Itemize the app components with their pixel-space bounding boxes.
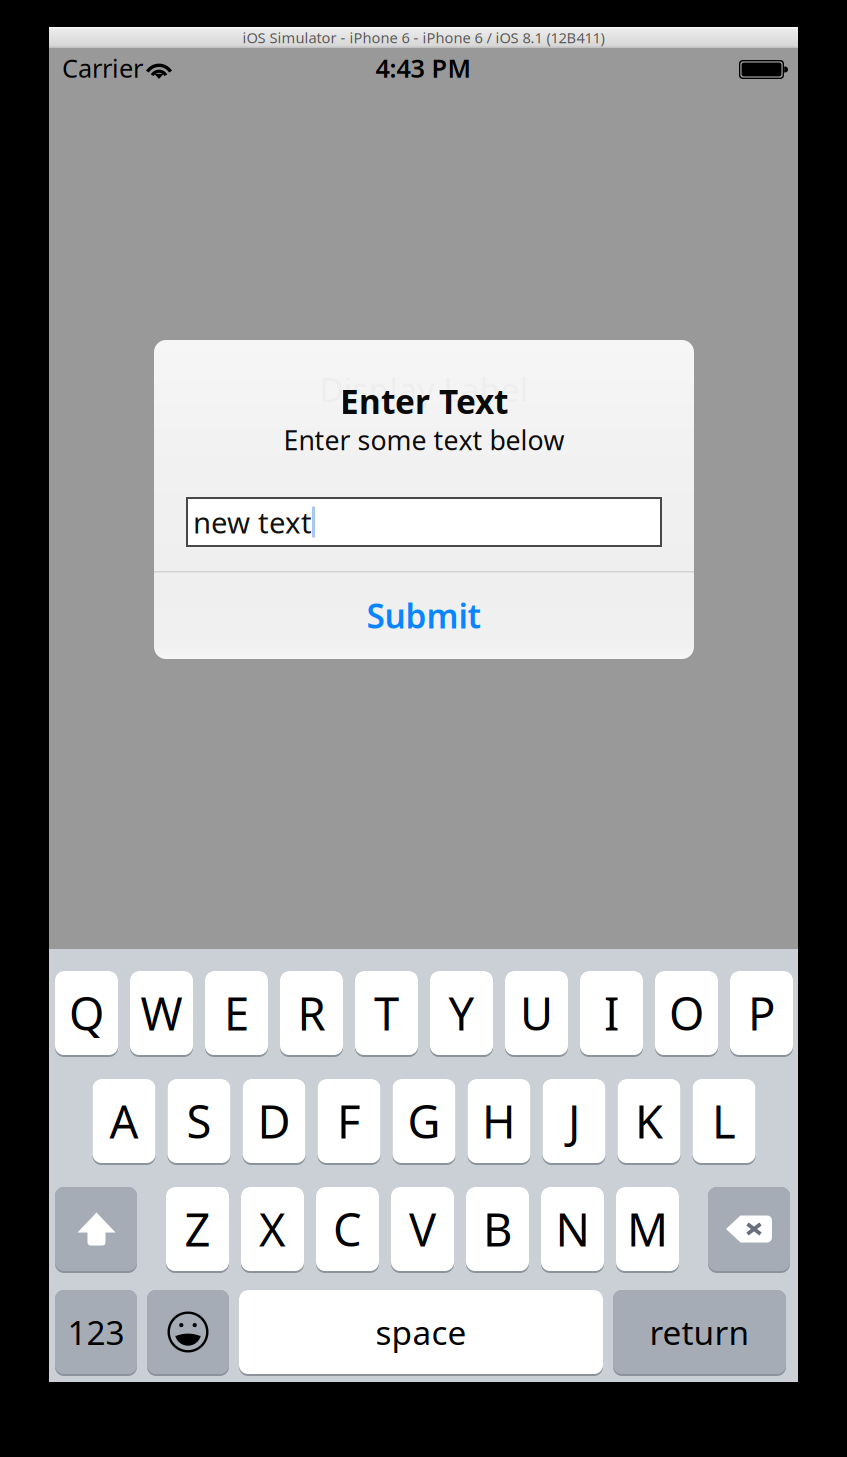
staticText: W xyxy=(140,983,182,1043)
staticText: 4:43 PM xyxy=(375,51,471,85)
staticText: V xyxy=(409,1199,436,1259)
staticText: N xyxy=(555,1199,589,1259)
button[interactable]: V xyxy=(391,1187,454,1273)
staticText: M xyxy=(627,1199,668,1259)
staticText: H xyxy=(482,1091,516,1151)
staticText: iOS Simulator - iPhone 6 - iPhone 6 / iO… xyxy=(242,28,604,47)
staticText: C xyxy=(333,1199,362,1259)
button[interactable]: 123 xyxy=(55,1290,137,1376)
staticText: G xyxy=(407,1091,440,1151)
staticText: T xyxy=(374,983,399,1043)
staticText: Enter some text below xyxy=(283,422,564,458)
staticText: Carrier xyxy=(62,51,143,85)
staticText: F xyxy=(337,1091,361,1151)
button[interactable]: W xyxy=(130,971,193,1057)
staticText: I xyxy=(604,983,619,1043)
staticText: Q xyxy=(69,983,104,1043)
button[interactable]: return xyxy=(613,1290,786,1376)
staticText: D xyxy=(257,1091,290,1151)
button[interactable]: Z xyxy=(166,1187,229,1273)
button[interactable]: U xyxy=(505,971,568,1057)
staticText: L xyxy=(712,1091,736,1151)
button[interactable]: S xyxy=(167,1079,230,1165)
button[interactable]: space xyxy=(239,1290,603,1376)
staticText: K xyxy=(635,1091,663,1151)
staticText: space xyxy=(375,1310,466,1354)
button[interactable]: O xyxy=(655,971,718,1057)
staticText: J xyxy=(568,1091,580,1151)
button[interactable]: Y xyxy=(430,971,493,1057)
staticText: Display Label xyxy=(319,367,528,411)
button[interactable]: R xyxy=(280,971,343,1057)
staticText: X xyxy=(259,1199,286,1259)
staticText: P xyxy=(748,983,775,1043)
button[interactable]: Submit xyxy=(154,572,694,659)
staticText: return xyxy=(649,1310,749,1354)
staticText: B xyxy=(483,1199,512,1259)
button[interactable]: G xyxy=(392,1079,455,1165)
staticText: new text xyxy=(193,502,312,541)
staticText: A xyxy=(109,1091,138,1151)
staticText: O xyxy=(669,983,704,1043)
staticText: Y xyxy=(448,983,474,1043)
staticText: Submit xyxy=(366,593,481,638)
button[interactable]: X xyxy=(241,1187,304,1273)
button[interactable]: I xyxy=(580,971,643,1057)
button[interactable]: J xyxy=(542,1079,605,1165)
staticText: Enter Text xyxy=(340,379,508,423)
button[interactable]: L xyxy=(692,1079,755,1165)
button[interactable]: B xyxy=(466,1187,529,1273)
button[interactable]: N xyxy=(541,1187,604,1273)
staticText: Z xyxy=(184,1199,210,1259)
button[interactable]: H xyxy=(467,1079,530,1165)
staticText: 123 xyxy=(67,1310,124,1354)
button[interactable]: D xyxy=(242,1079,305,1165)
button[interactable]: Emoji xyxy=(147,1290,229,1376)
staticText: E xyxy=(224,983,249,1043)
button[interactable]: P xyxy=(730,971,793,1057)
button[interactable]: Delete xyxy=(708,1187,790,1273)
button[interactable]: Q xyxy=(55,971,118,1057)
button[interactable]: M xyxy=(616,1187,679,1273)
button[interactable]: A xyxy=(92,1079,155,1165)
button[interactable]: Shift xyxy=(55,1187,137,1273)
staticText: S xyxy=(186,1091,211,1151)
button[interactable]: T xyxy=(355,971,418,1057)
button[interactable]: C xyxy=(316,1187,379,1273)
button[interactable]: K xyxy=(617,1079,680,1165)
button[interactable]: E xyxy=(205,971,268,1057)
staticText: R xyxy=(297,983,325,1043)
button[interactable]: F xyxy=(317,1079,380,1165)
staticText: U xyxy=(520,983,553,1043)
